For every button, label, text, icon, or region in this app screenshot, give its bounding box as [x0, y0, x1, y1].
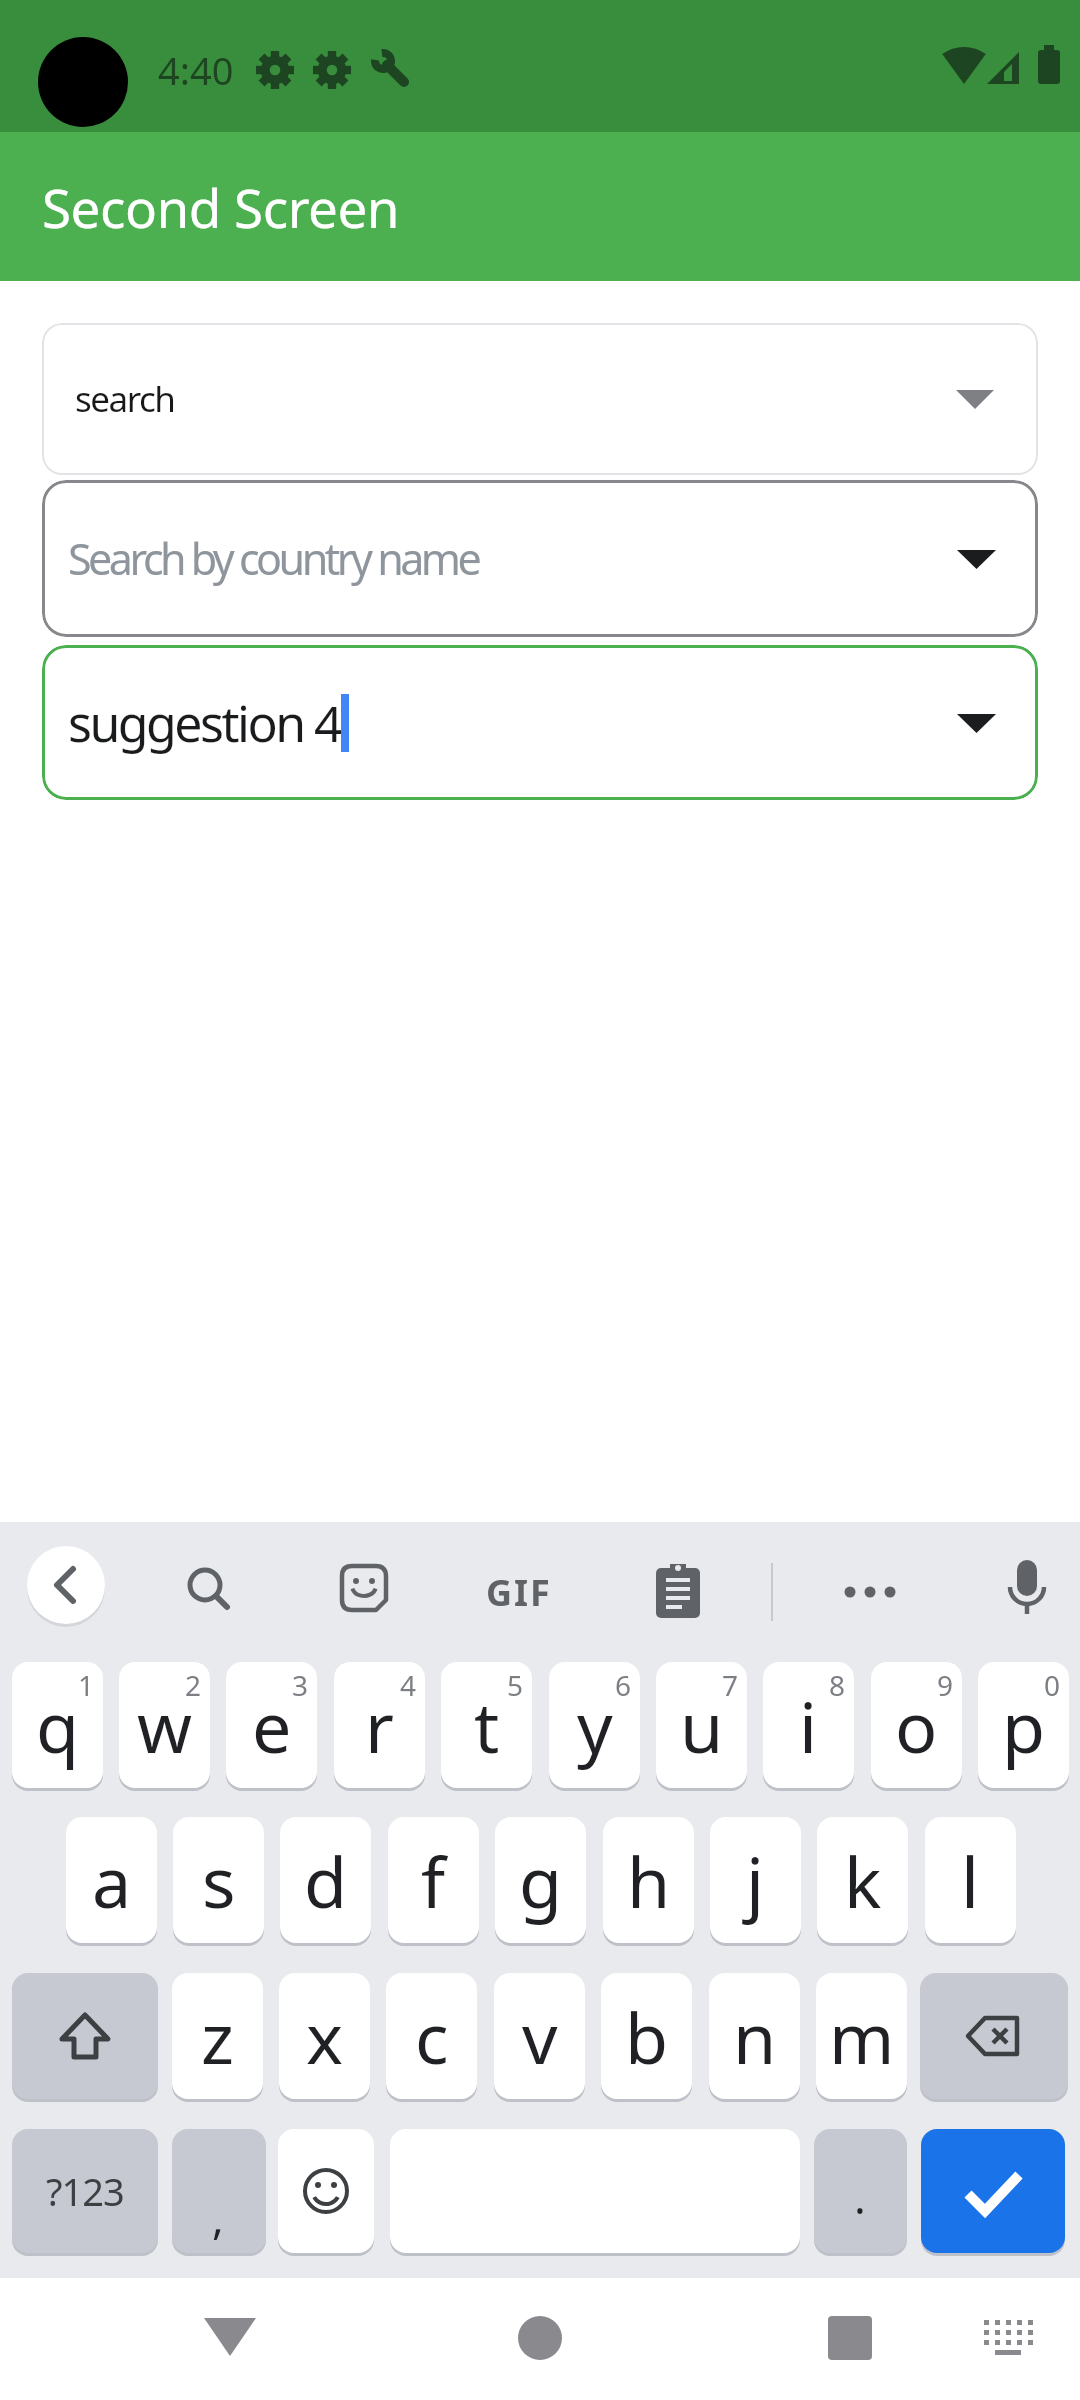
- button[interactable]: i: [763, 1662, 854, 1788]
- button[interactable]: p: [978, 1662, 1069, 1788]
- staticText: x: [306, 1989, 344, 2084]
- button[interactable]: [192, 2306, 268, 2370]
- button[interactable]: w: [119, 1662, 210, 1788]
- staticText: GIF: [486, 1568, 552, 1612]
- staticText: m: [829, 1989, 895, 2084]
- button[interactable]: g: [495, 1817, 586, 1943]
- button[interactable]: b: [601, 1973, 692, 2099]
- staticText: 3: [292, 1666, 309, 1704]
- button[interactable]: [27, 1546, 105, 1624]
- staticText: 4:40: [158, 44, 234, 96]
- button[interactable]: [816, 2306, 884, 2370]
- staticText: c: [415, 1989, 449, 2084]
- button[interactable]: [181, 1561, 233, 1613]
- staticText: ?123: [46, 2165, 124, 2217]
- button[interactable]: z: [172, 1973, 263, 2099]
- staticText: 6: [615, 1666, 632, 1704]
- staticText: t: [474, 1678, 500, 1773]
- staticText: 8: [829, 1666, 846, 1704]
- button[interactable]: j: [710, 1817, 801, 1943]
- button[interactable]: y: [549, 1662, 640, 1788]
- staticText: Search by country name: [68, 529, 479, 588]
- staticText: 0: [1044, 1666, 1061, 1704]
- button[interactable]: [921, 2129, 1065, 2253]
- staticText: n: [733, 1989, 777, 2084]
- staticText: f: [421, 1833, 446, 1928]
- button[interactable]: search: [42, 323, 1038, 475]
- staticText: k: [844, 1833, 882, 1928]
- button[interactable]: [920, 1973, 1068, 2099]
- button[interactable]: x: [279, 1973, 370, 2099]
- button[interactable]: ?123: [12, 2129, 158, 2253]
- button[interactable]: [506, 2306, 574, 2370]
- staticText: 4: [400, 1666, 417, 1704]
- button[interactable]: v: [494, 1973, 585, 2099]
- staticText: a: [92, 1833, 132, 1928]
- button[interactable]: n: [709, 1973, 800, 2099]
- staticText: y: [577, 1678, 613, 1773]
- staticText: r: [365, 1678, 394, 1773]
- button[interactable]: l: [925, 1817, 1016, 1943]
- staticText: 2: [185, 1666, 202, 1704]
- staticText: Second Screen: [42, 171, 400, 243]
- staticText: v: [522, 1989, 558, 2084]
- button[interactable]: [843, 1584, 897, 1600]
- button[interactable]: e: [226, 1662, 317, 1788]
- staticText: 7: [722, 1666, 739, 1704]
- staticText: q: [36, 1678, 80, 1773]
- staticText: ,: [212, 2187, 224, 2247]
- button[interactable]: Search by country name: [42, 480, 1038, 637]
- staticText: b: [625, 1989, 669, 2084]
- button[interactable]: h: [603, 1817, 694, 1943]
- button[interactable]: suggestion 4: [42, 645, 1038, 800]
- staticText: .: [854, 2167, 866, 2227]
- staticText: p: [1002, 1678, 1046, 1773]
- staticText: i: [799, 1678, 818, 1773]
- button[interactable]: o: [871, 1662, 962, 1788]
- staticText: search: [75, 375, 175, 423]
- button[interactable]: q: [12, 1662, 103, 1788]
- button[interactable]: [972, 2306, 1044, 2370]
- button[interactable]: GIF: [459, 1568, 579, 1612]
- button[interactable]: s: [173, 1817, 264, 1943]
- button[interactable]: a: [66, 1817, 157, 1943]
- staticText: u: [680, 1678, 724, 1773]
- button[interactable]: t: [441, 1662, 532, 1788]
- staticText: s: [202, 1833, 236, 1928]
- button[interactable]: d: [280, 1817, 371, 1943]
- button[interactable]: [1005, 1560, 1049, 1622]
- button[interactable]: u: [656, 1662, 747, 1788]
- staticText: 1: [78, 1666, 95, 1704]
- button[interactable]: [278, 2129, 374, 2253]
- button[interactable]: [656, 1564, 700, 1618]
- staticText: e: [252, 1678, 292, 1773]
- staticText: d: [304, 1833, 348, 1928]
- button[interactable]: ,: [172, 2129, 266, 2253]
- staticText: 5: [507, 1666, 524, 1704]
- button[interactable]: .: [814, 2129, 907, 2253]
- staticText: o: [895, 1678, 938, 1773]
- staticText: l: [961, 1833, 980, 1928]
- button[interactable]: r: [334, 1662, 425, 1788]
- staticText: j: [746, 1833, 765, 1928]
- button[interactable]: [340, 1564, 392, 1616]
- staticText: z: [201, 1989, 234, 2084]
- button[interactable]: c: [386, 1973, 477, 2099]
- staticText: suggestion 4: [68, 689, 341, 757]
- button[interactable]: m: [816, 1973, 907, 2099]
- button[interactable]: k: [817, 1817, 908, 1943]
- button[interactable]: f: [388, 1817, 479, 1943]
- staticText: g: [519, 1833, 563, 1928]
- staticText: 9: [937, 1666, 954, 1704]
- staticText: h: [627, 1833, 671, 1928]
- button[interactable]: [12, 1973, 158, 2099]
- staticText: w: [137, 1678, 193, 1773]
